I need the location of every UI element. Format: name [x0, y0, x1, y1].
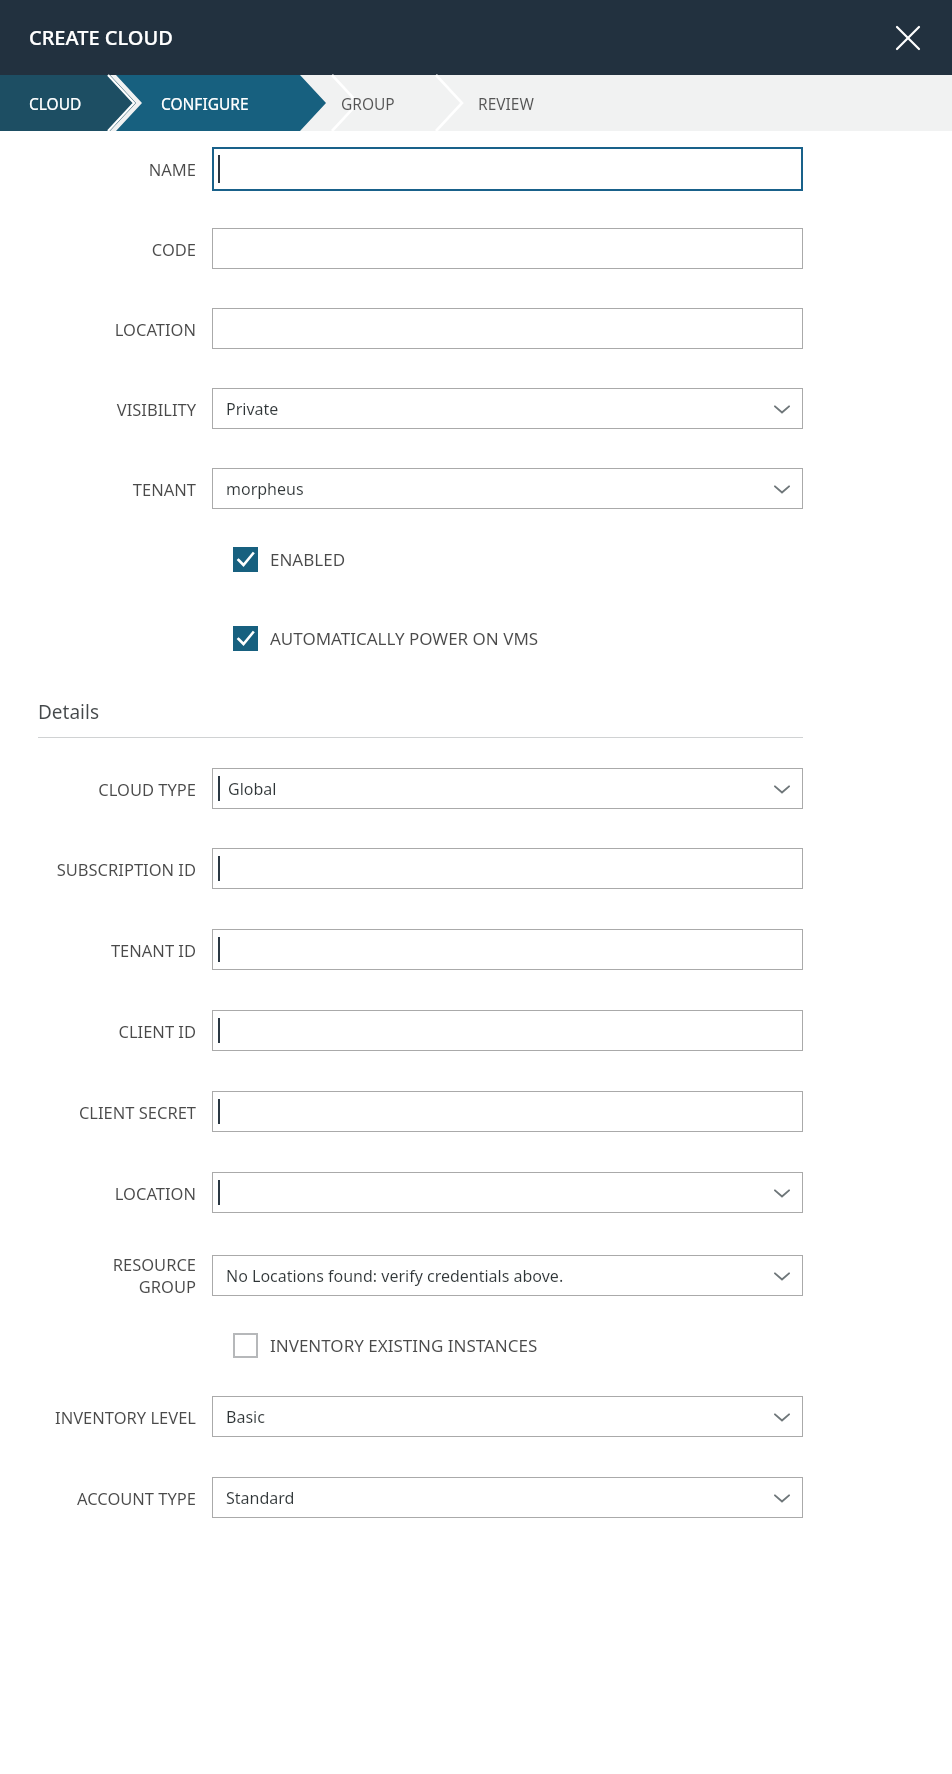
button[interactable] [212, 1172, 803, 1213]
button[interactable]: INVENTORY EXISTING INSTANCES [0, 1333, 952, 1358]
staticText: VISIBILITY [116, 398, 196, 420]
button[interactable]: morpheus [212, 468, 803, 509]
button[interactable] [212, 848, 803, 889]
button[interactable]: Standard [212, 1477, 803, 1518]
button[interactable]: No Locations found: verify credentials a… [212, 1255, 803, 1296]
button[interactable]: AUTOMATICALLY POWER ON VMS [0, 626, 952, 651]
staticText: LOCATION [114, 1182, 196, 1204]
staticText: morpheus [226, 478, 304, 500]
staticText: GROUP [341, 93, 395, 114]
staticText: Details [38, 699, 100, 725]
staticText: CLIENT SECRET [78, 1101, 196, 1123]
button[interactable]: Global [212, 768, 803, 809]
button[interactable] [212, 1091, 803, 1132]
staticText: CONFIGURE [161, 93, 249, 114]
staticText: TENANT ID [110, 939, 196, 961]
staticText: GROUP [138, 1275, 196, 1297]
button[interactable] [212, 308, 803, 349]
staticText: LOCATION [114, 318, 196, 340]
button[interactable] [212, 1010, 803, 1051]
staticText: REVIEW [478, 93, 534, 114]
button[interactable] [212, 147, 803, 191]
button[interactable]: REVIEW [436, 75, 576, 131]
staticText: INVENTORY LEVEL [55, 1406, 196, 1428]
button[interactable]: CLOUD [0, 75, 110, 131]
staticText: No Locations found: verify credentials a… [226, 1265, 564, 1287]
staticText: CREATE CLOUD [29, 24, 173, 51]
staticText: RESOURCE [112, 1253, 196, 1275]
button[interactable]: Close [886, 16, 930, 60]
button[interactable]: ENABLED [0, 547, 952, 572]
staticText: ENABLED [270, 548, 346, 571]
staticText: NAME [148, 158, 196, 180]
button[interactable]: GROUP [300, 75, 436, 131]
button[interactable]: Private [212, 388, 803, 429]
staticText: CODE [151, 238, 196, 260]
button[interactable] [212, 929, 803, 970]
staticText: CLOUD [29, 93, 82, 114]
button[interactable]: CONFIGURE [110, 75, 300, 131]
staticText: ACCOUNT TYPE [76, 1487, 196, 1509]
staticText: Basic [226, 1406, 265, 1428]
button[interactable]: Basic [212, 1396, 803, 1437]
staticText: CLOUD TYPE [98, 778, 196, 800]
button[interactable] [212, 228, 803, 269]
staticText: AUTOMATICALLY POWER ON VMS [270, 627, 539, 650]
staticText: TENANT [132, 478, 196, 500]
staticText: INVENTORY EXISTING INSTANCES [270, 1334, 538, 1357]
staticText: Private [226, 398, 279, 420]
staticText: Standard [226, 1487, 295, 1509]
staticText: CLIENT ID [118, 1020, 196, 1042]
staticText: SUBSCRIPTION ID [56, 858, 196, 880]
staticText: Global [228, 778, 277, 800]
